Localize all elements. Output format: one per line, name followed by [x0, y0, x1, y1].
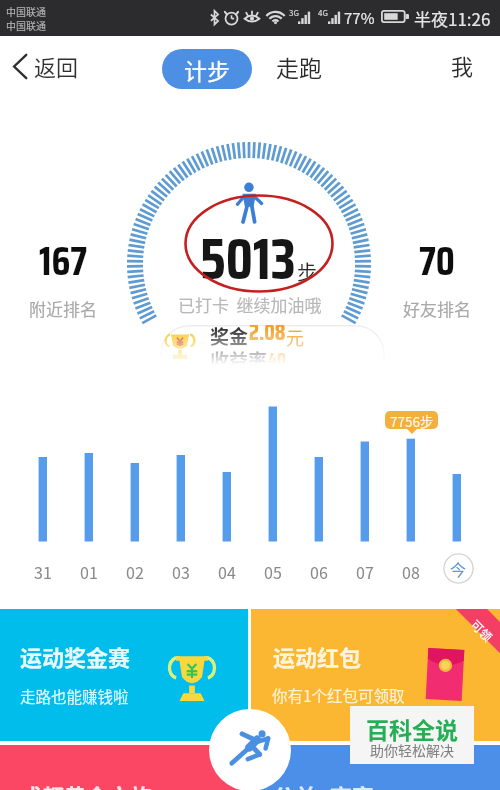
staticText: 我 — [451, 49, 474, 81]
staticText: 计步 — [184, 53, 230, 86]
button[interactable]: 今 — [443, 553, 474, 584]
staticText: 好友排名 — [403, 296, 471, 321]
staticText: 31 — [34, 560, 52, 583]
staticText: 05 — [264, 560, 282, 583]
button[interactable]: Start running — [209, 709, 291, 790]
staticText: 成都黄金文旅 — [20, 779, 153, 790]
staticText: 可领 — [468, 616, 497, 645]
staticText: 奖金 — [210, 325, 249, 350]
staticText: 公益e商家 — [273, 779, 374, 790]
button[interactable]: 成都黄金文旅 — [0, 745, 248, 790]
staticText: 3G — [289, 7, 299, 19]
staticText: 运动红包 — [273, 640, 362, 672]
staticText: 今 — [450, 557, 467, 580]
staticText: 7756步 — [390, 411, 434, 429]
staticText: 你有1个红包可领取 — [272, 684, 405, 706]
staticText: 70 — [419, 230, 455, 293]
staticText: 5013 — [200, 214, 296, 304]
staticText: 返回 — [34, 50, 79, 82]
button[interactable]: 计步 — [162, 49, 252, 89]
staticText: 01 — [80, 560, 98, 583]
staticText: 06 — [310, 560, 328, 583]
staticText: 07 — [356, 560, 374, 583]
staticText: 40 — [268, 344, 286, 374]
staticText: 元 — [286, 325, 304, 350]
button[interactable]: 我 — [436, 45, 489, 85]
staticText: 167 — [39, 230, 88, 293]
staticText: 03 — [172, 560, 190, 583]
staticText: 走路也能赚钱啦 — [20, 685, 129, 707]
staticText: 已打卡 继续加油哦 — [178, 292, 322, 317]
staticText: 半夜11:26 — [414, 6, 491, 31]
button[interactable]: 走跑 — [267, 46, 331, 86]
button[interactable]: 返回 — [5, 44, 91, 88]
staticText: 中国联通 — [6, 18, 46, 32]
staticText: 77% — [344, 7, 375, 29]
staticText: 走跑 — [276, 50, 322, 83]
staticText: 收益率 — [210, 346, 268, 374]
staticText: 4G — [318, 7, 328, 19]
staticText: 2.08 — [249, 325, 286, 350]
staticText: 助你轻松解决 — [370, 740, 454, 760]
staticText: 08 — [402, 560, 420, 583]
staticText: 04 — [218, 560, 236, 583]
button[interactable]: 奖金 — [160, 325, 385, 383]
button[interactable]: 公益e商家 — [251, 745, 500, 790]
staticText: 02 — [126, 560, 144, 583]
staticText: 百科全说 — [366, 712, 458, 745]
staticText: 步 — [297, 257, 317, 286]
staticText: 运动奖金赛 — [20, 640, 131, 672]
staticText: 中国联通 — [6, 4, 46, 18]
staticText: 附近排名 — [29, 296, 97, 321]
button[interactable]: 运动红包 — [251, 609, 500, 741]
button[interactable]: 运动奖金赛 — [0, 609, 248, 741]
